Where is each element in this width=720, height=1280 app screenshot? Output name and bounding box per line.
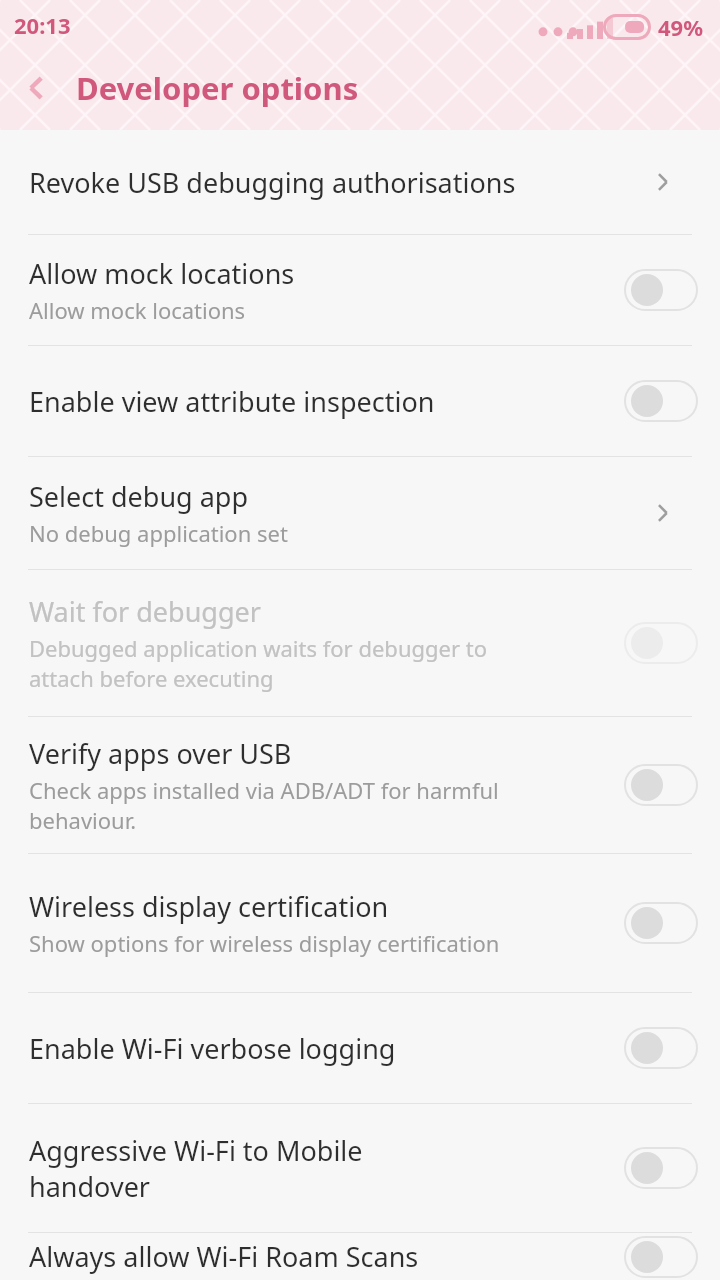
button[interactable]: Verify apps over USB xyxy=(0,717,720,853)
staticText: Allow mock locations xyxy=(29,295,246,325)
button[interactable]: Wait for debugger xyxy=(0,570,720,716)
button[interactable]: Select debug app xyxy=(0,457,720,569)
button[interactable]: Back xyxy=(0,46,76,130)
staticText: Select debug app xyxy=(29,478,249,515)
staticText: 20:13 xyxy=(14,10,71,40)
staticText: No debug application set xyxy=(29,518,288,548)
button[interactable]: Wireless display certification xyxy=(0,854,720,992)
staticText: Wait for debugger xyxy=(29,593,261,630)
button[interactable]: Enable view attribute inspection xyxy=(0,346,720,456)
staticText: Enable Wi-Fi verbose logging xyxy=(29,1030,396,1067)
staticText: Revoke USB debugging authorisations xyxy=(29,164,516,201)
staticText: 49% xyxy=(658,12,704,42)
button[interactable]: Allow mock locations xyxy=(0,235,720,345)
staticText: Allow mock locations xyxy=(29,255,295,292)
staticText: Enable view attribute inspection xyxy=(29,383,435,420)
staticText: Debugged application waits for debugger … xyxy=(29,633,519,694)
staticText: Always allow Wi-Fi Roam Scans xyxy=(29,1238,419,1275)
button[interactable]: Revoke USB debugging authorisations xyxy=(0,130,720,234)
button[interactable]: Aggressive Wi-Fi to Mobile handover xyxy=(0,1104,720,1232)
staticText: Verify apps over USB xyxy=(29,735,292,772)
button[interactable]: Always allow Wi-Fi Roam Scans xyxy=(0,1233,720,1280)
staticText: Developer options xyxy=(76,67,359,109)
staticText: Check apps installed via ADB/ADT for har… xyxy=(29,775,519,836)
staticText: Show options for wireless display certif… xyxy=(29,928,500,958)
staticText: Wireless display certification xyxy=(29,888,389,925)
staticText: Aggressive Wi-Fi to Mobile handover xyxy=(29,1132,459,1205)
button[interactable]: Enable Wi-Fi verbose logging xyxy=(0,993,720,1103)
